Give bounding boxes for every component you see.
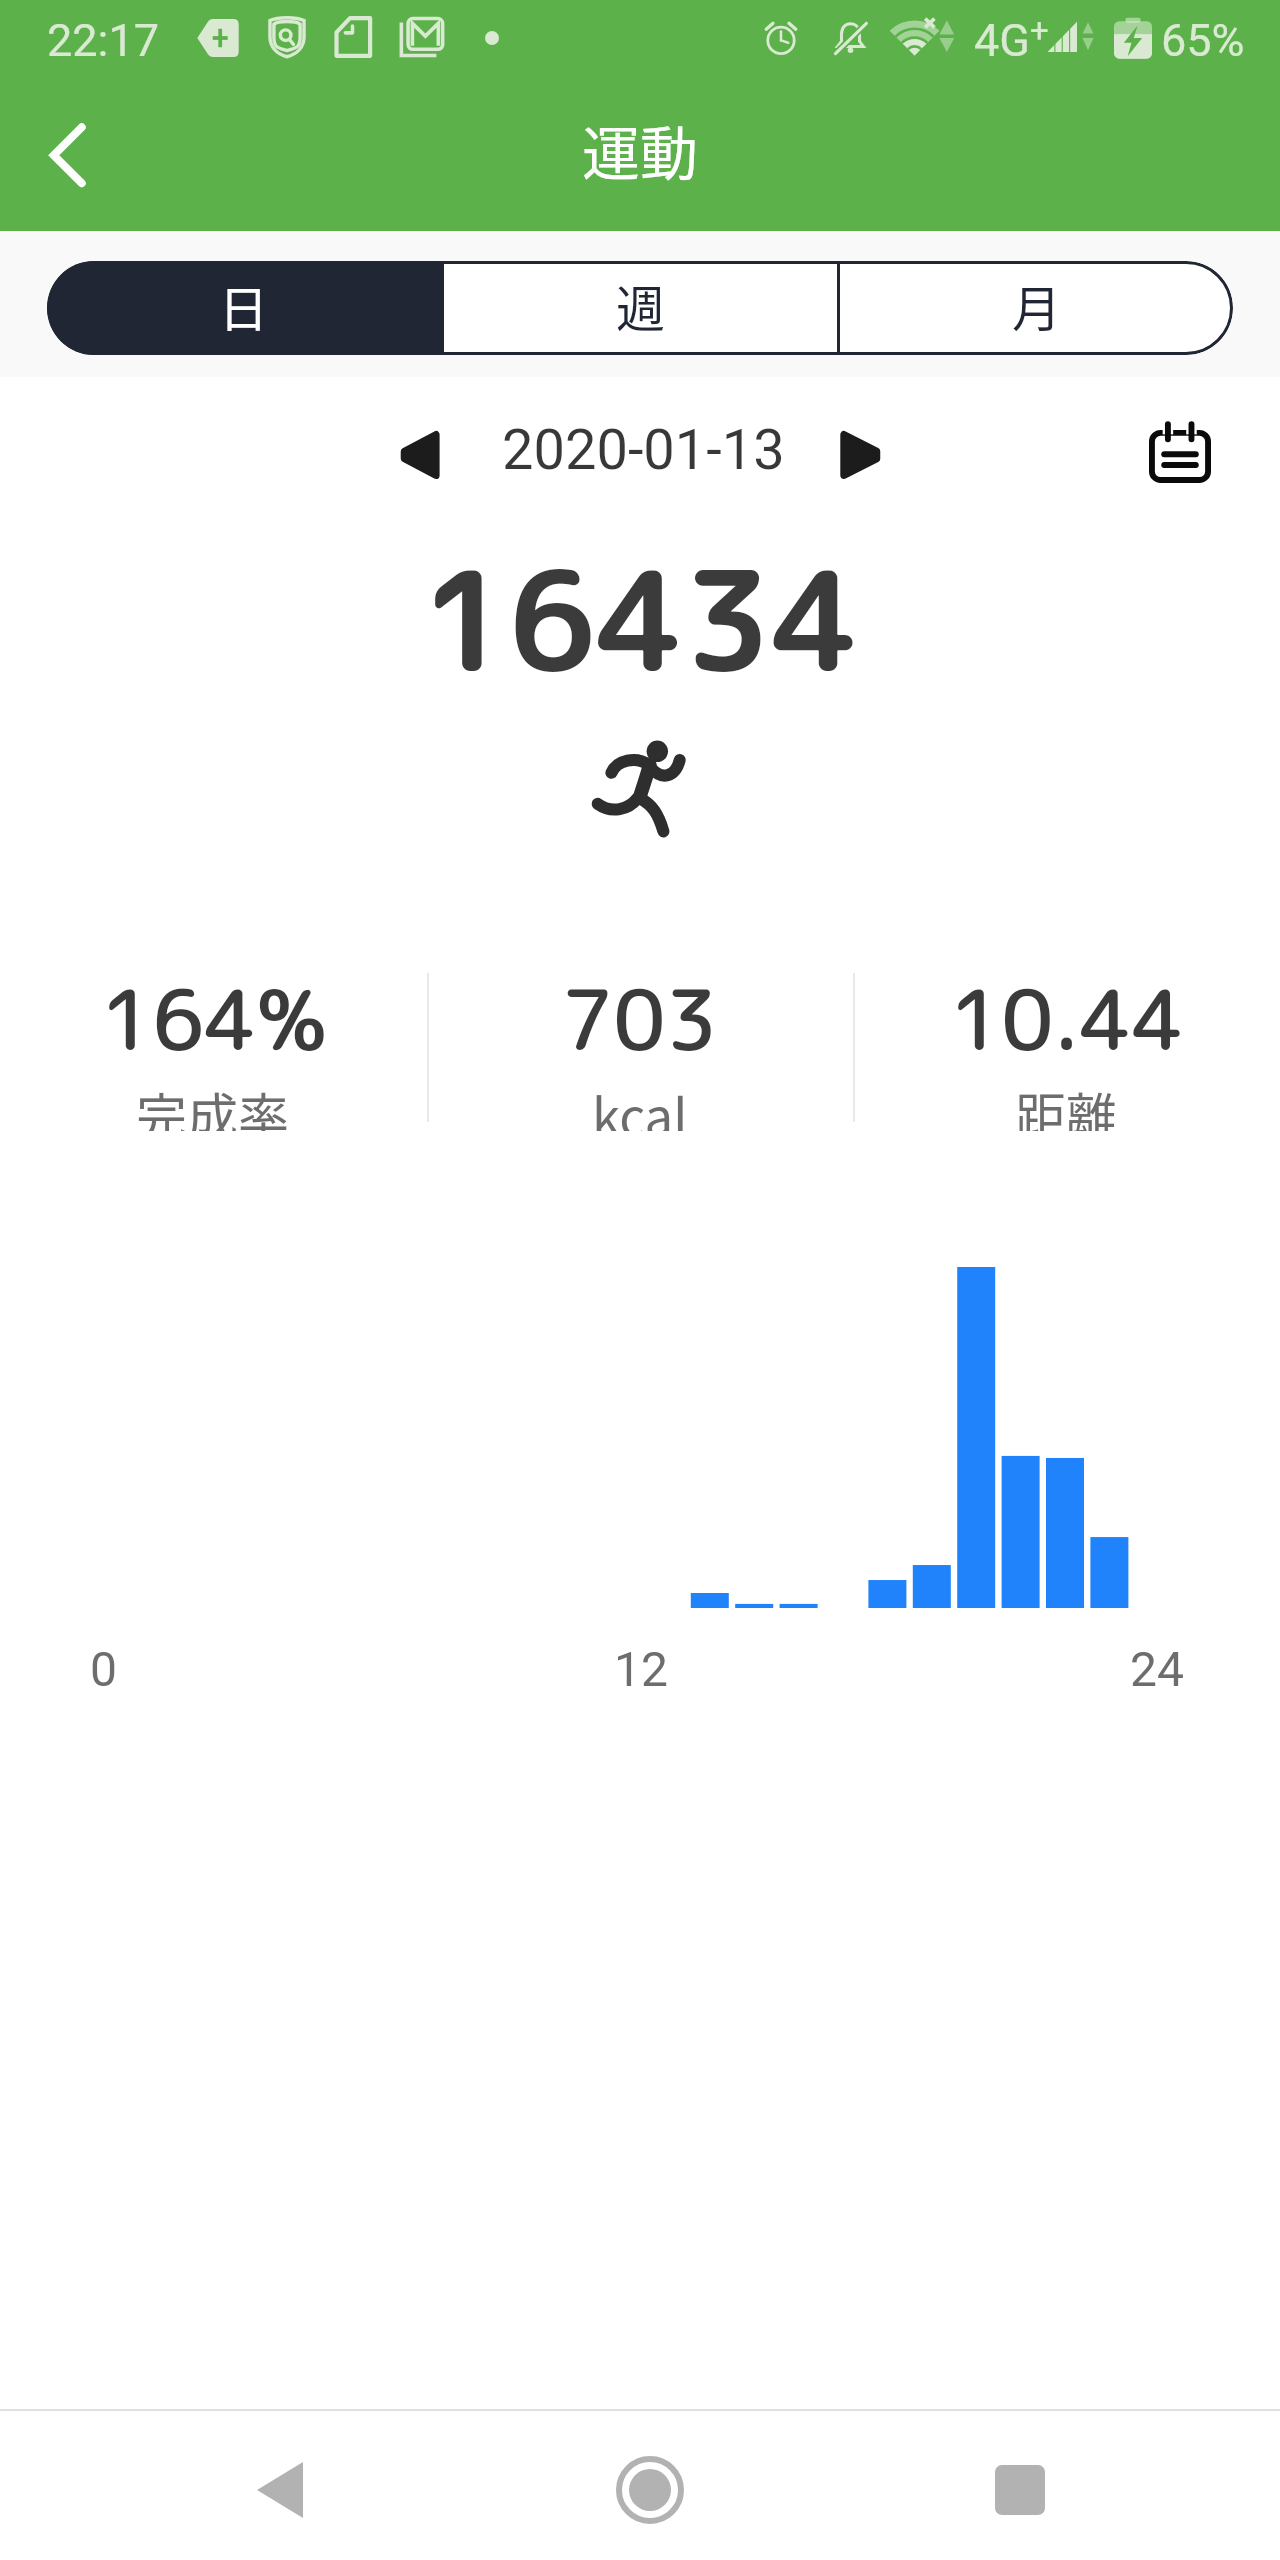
staticText: 10.44	[949, 961, 1185, 1077]
staticText: 日	[219, 270, 269, 341]
staticText: 12	[614, 1641, 668, 1697]
staticText: 距離	[1015, 1077, 1118, 1131]
button[interactable]: 703	[426, 951, 853, 1131]
button[interactable]: System back	[180, 2420, 380, 2560]
staticText: 65%	[1161, 14, 1245, 67]
button[interactable]: Recent apps	[920, 2420, 1120, 2560]
staticText: 週	[616, 270, 666, 341]
button[interactable]: Notes	[1132, 405, 1228, 501]
staticText: 703	[561, 961, 718, 1077]
button[interactable]: 日	[47, 261, 441, 355]
button[interactable]: Previous day	[370, 400, 466, 510]
staticText: 164%	[100, 961, 327, 1077]
button[interactable]: 月	[840, 261, 1233, 355]
staticText: 完成率	[136, 1077, 290, 1131]
button[interactable]: 164%	[0, 951, 426, 1131]
staticText: 0	[90, 1641, 117, 1697]
button[interactable]: Back	[14, 92, 126, 204]
button[interactable]: 週	[444, 261, 837, 355]
staticText: 運動	[582, 108, 699, 192]
staticText: 22:17	[47, 14, 160, 67]
staticText: 24	[1130, 1641, 1184, 1697]
button[interactable]: 10.44	[853, 951, 1280, 1131]
staticText: 4G	[974, 14, 1030, 67]
button[interactable]: Next day	[814, 400, 910, 510]
staticText: 16434	[421, 524, 860, 715]
staticText: +	[1030, 11, 1049, 50]
staticText: 月	[1012, 270, 1062, 341]
button[interactable]: Home	[550, 2420, 750, 2560]
staticText: kcal	[592, 1077, 688, 1131]
staticText: 2020-01-13	[502, 417, 785, 483]
